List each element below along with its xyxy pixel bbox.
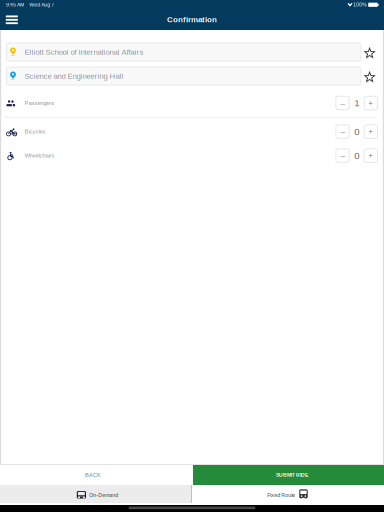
button[interactable]: On-Demand	[0, 485, 191, 503]
button[interactable]: Decrease Bicycles	[336, 125, 349, 138]
staticText: Confirmation	[167, 15, 217, 24]
staticText: Wed Aug 7	[29, 2, 54, 8]
staticText: +	[368, 151, 373, 160]
staticText: –	[340, 98, 344, 107]
button[interactable]: BACK	[0, 465, 193, 485]
staticText: 0	[354, 126, 359, 137]
staticText: 1	[354, 98, 359, 108]
staticText: BACK	[85, 472, 101, 478]
button[interactable]: Fixed Route	[192, 485, 384, 503]
button[interactable]: Save as favourite	[364, 43, 375, 61]
staticText: Passengers	[24, 100, 54, 106]
staticText: –	[340, 127, 344, 136]
staticText: Elliott School of International Affairs	[24, 48, 143, 56]
staticText: 100%	[353, 2, 367, 8]
staticText: –	[340, 151, 344, 160]
button[interactable]: Increase Wheelchairs	[364, 149, 377, 162]
button[interactable]: SUBMIT RIDE	[193, 465, 384, 485]
button[interactable]: Increase Passengers	[364, 96, 377, 110]
staticText: On-Demand	[89, 492, 118, 498]
staticText: Science and Engineering Hall	[24, 72, 123, 80]
staticText: Bicycles	[24, 128, 45, 135]
button[interactable]: Decrease Passengers	[336, 96, 349, 110]
button[interactable]: Menu	[0, 11, 24, 30]
staticText: Wheelchairs	[24, 152, 54, 159]
button[interactable]: Increase Bicycles	[364, 125, 377, 138]
button[interactable]: Decrease Wheelchairs	[336, 149, 349, 162]
staticText: 0	[354, 150, 359, 161]
staticText: +	[368, 98, 373, 107]
staticText: SUBMIT RIDE	[276, 472, 308, 478]
button[interactable]: Save as favourite	[364, 67, 375, 85]
staticText: Fixed Route	[267, 492, 295, 498]
staticText: 9:45 AM	[6, 2, 24, 8]
staticText: +	[368, 127, 373, 136]
